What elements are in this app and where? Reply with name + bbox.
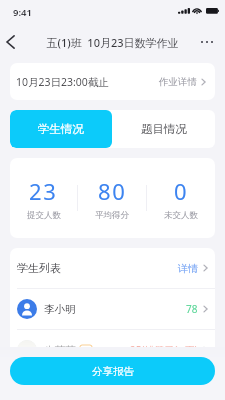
button[interactable]: More options (198, 26, 216, 59)
staticText: 10月23日23:00截止 (16, 75, 109, 89)
button[interactable]: 牛菇菇 (10, 330, 215, 370)
button[interactable]: 0 (147, 158, 215, 238)
staticText: 详情 (178, 262, 198, 275)
staticText: 未交人数 (164, 210, 198, 221)
button[interactable]: Back (0, 26, 20, 59)
staticText: 78 (186, 302, 198, 316)
staticText: 牛菇菇 (44, 344, 76, 357)
button[interactable]: 23 (10, 158, 77, 238)
button[interactable]: 学生列表 (10, 248, 215, 288)
staticText: 题目情况 (141, 122, 187, 136)
staticText: 23 (29, 176, 58, 206)
staticText: 平均得分 (95, 210, 129, 221)
staticText: 五(1)班 10月23日数学作业 (46, 35, 179, 50)
staticText: 分享报告 (92, 365, 134, 378)
staticText: 作业详情 (159, 76, 197, 88)
button[interactable]: 学生情况 (10, 110, 112, 148)
staticText: 李小明 (44, 303, 76, 316)
staticText: 学生列表 (17, 261, 61, 275)
button[interactable]: 分享报告 (10, 357, 215, 385)
staticText: 9:41 (13, 6, 32, 19)
button[interactable]: 10月23日23:00截止 (10, 63, 215, 100)
staticText: 80 (98, 176, 127, 206)
staticText: 0 (174, 176, 189, 206)
staticText: 学生情况 (38, 122, 84, 136)
staticText: 25(错题已订正) (130, 343, 198, 357)
button[interactable]: 80 (78, 158, 146, 238)
button[interactable]: 题目情况 (112, 110, 215, 148)
button[interactable]: 李小明 (10, 289, 215, 329)
staticText: 提交人数 (27, 210, 61, 221)
